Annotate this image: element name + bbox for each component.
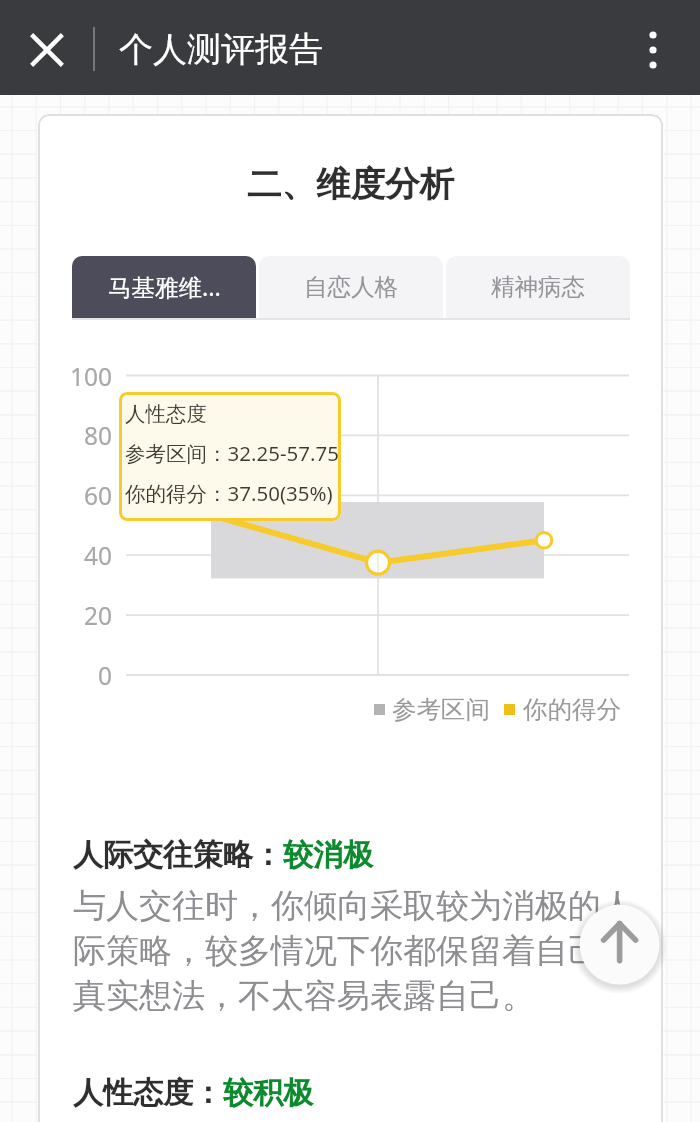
staticText: 参考区间：32.25-57.75 [125,439,339,467]
staticText: 40 [40,539,112,572]
button[interactable]: 精神病态 [446,256,630,318]
staticText: 马基雅维... [108,271,221,303]
staticText: 80 [40,419,112,452]
staticText: 0 [40,659,112,692]
button[interactable]: 自恋人格 [259,256,443,318]
staticText: 与人交往时，你倾向采取较为消极的人 际策略，较多情况下你都保留着自己 真实想法，… [73,885,634,1016]
staticText: 你的得分：37.50(35%) [125,479,333,507]
staticText: 参考区间 [392,694,490,725]
staticText: 100 [40,360,112,393]
staticText: 人性态度：较积极 [73,1074,313,1112]
staticText: 你的得分 [523,694,621,725]
staticText: 自恋人格 [304,272,398,302]
button[interactable]: Close [11,14,83,86]
button[interactable]: 马基雅维... [72,256,256,318]
staticText: 精神病态 [491,272,585,302]
button[interactable]: More options [625,22,681,78]
staticText: 人际交往策略：较消极 [73,836,373,874]
staticText: 个人测评报告 [119,28,323,71]
staticText: 人性态度 [125,401,207,427]
staticText: 二、维度分析 [38,163,663,206]
staticText: 20 [40,599,112,632]
button[interactable]: Scroll to top [568,893,672,997]
staticText: 60 [40,479,112,512]
